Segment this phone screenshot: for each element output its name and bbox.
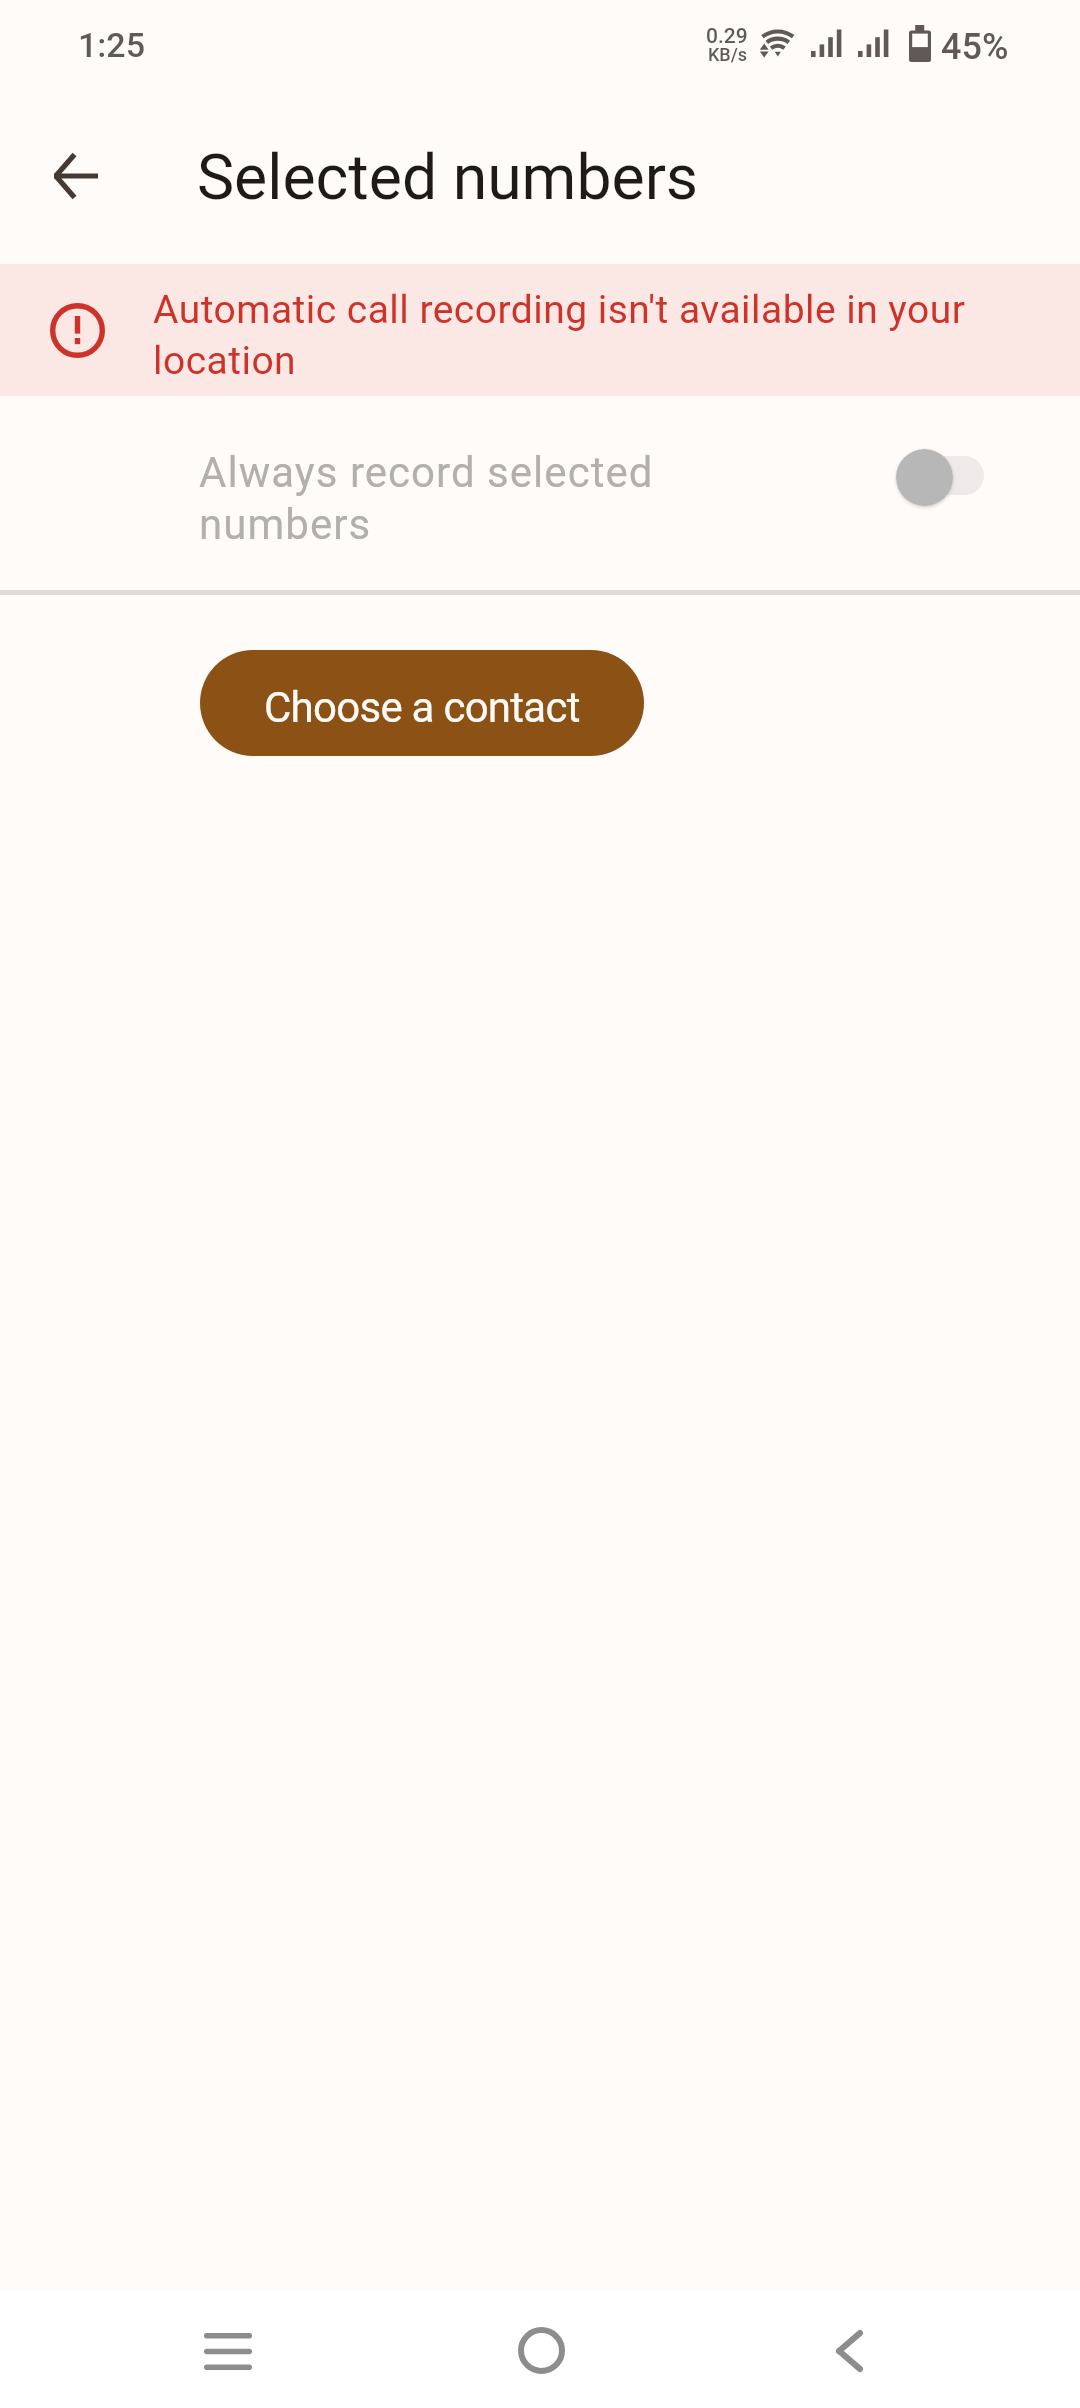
staticText: KB/s xyxy=(708,44,748,65)
staticText: Choose a contact xyxy=(264,683,580,732)
staticText: 1:25 xyxy=(78,25,145,65)
button[interactable]: Always record selected numbers xyxy=(0,396,1080,589)
button[interactable]: Recent apps xyxy=(158,2293,298,2408)
staticText: 45% xyxy=(941,26,1009,68)
button[interactable]: Always record selected numbers toggle xyxy=(896,449,984,506)
button[interactable]: Back xyxy=(28,128,124,224)
button[interactable]: Back xyxy=(779,2292,919,2408)
staticText: Automatic call recording isn't available… xyxy=(153,287,1013,383)
button[interactable]: Home xyxy=(471,2292,611,2408)
staticText: Always record selected numbers xyxy=(199,448,679,549)
staticText: Selected numbers xyxy=(197,141,699,214)
button[interactable]: Choose a contact xyxy=(200,650,644,756)
staticText: 0.29 xyxy=(706,24,748,49)
